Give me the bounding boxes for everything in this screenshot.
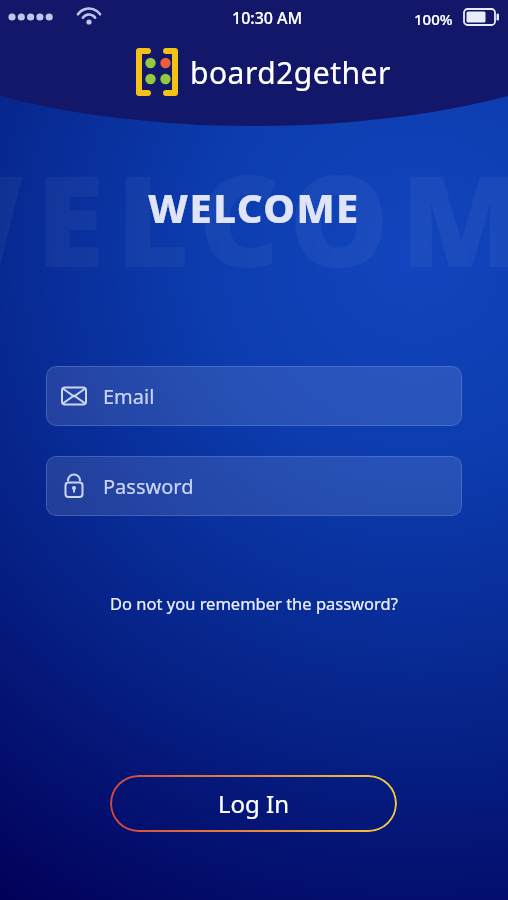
staticText: WELCOME xyxy=(148,180,360,234)
button[interactable]: Log In xyxy=(110,775,397,832)
staticText: 10:30 AM xyxy=(232,7,303,29)
button[interactable]: Email xyxy=(46,366,462,426)
staticText: Email xyxy=(103,383,155,410)
button[interactable]: Password xyxy=(46,456,462,516)
staticText: board2gether xyxy=(190,52,391,93)
staticText: WELCOME xyxy=(0,133,508,303)
staticText: 100% xyxy=(414,9,453,29)
staticText: Password xyxy=(103,473,194,500)
staticText: Log In xyxy=(218,787,290,820)
button[interactable]: Do not you remember the password? xyxy=(110,592,398,614)
